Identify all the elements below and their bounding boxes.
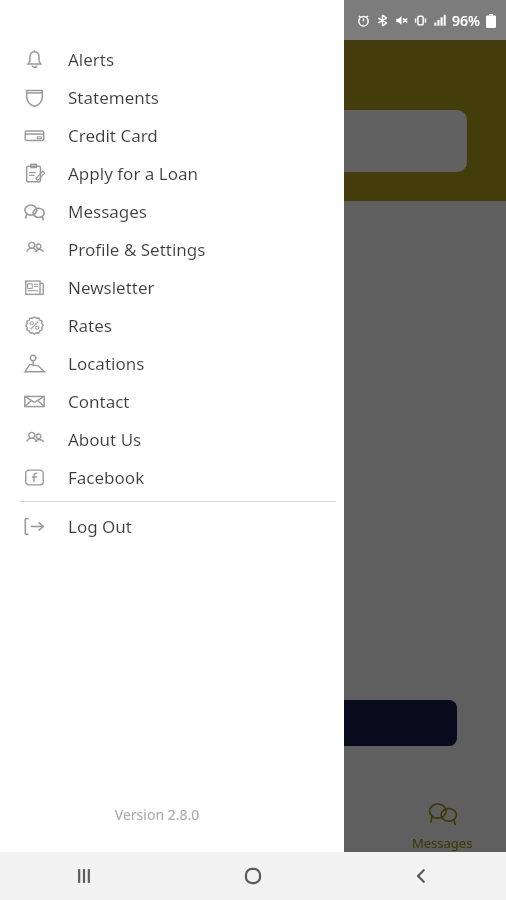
staticText: Contact: [68, 390, 130, 413]
button[interactable]: Contact: [0, 382, 344, 420]
button[interactable]: Sent: [18, 110, 467, 172]
staticText: Messages: [412, 834, 473, 852]
staticText: Version 2.8.0: [0, 805, 314, 824]
button[interactable]: Pay: [252, 788, 379, 860]
staticText: Alerts: [68, 48, 115, 71]
button[interactable]: Alerts: [0, 40, 344, 78]
staticText: Messages: [68, 200, 148, 223]
button[interactable]: Messages: [379, 788, 506, 860]
staticText: Facebook: [68, 466, 145, 489]
staticText: Statements: [68, 86, 160, 109]
button[interactable]: Log Out: [0, 507, 344, 545]
button[interactable]: About Us: [0, 420, 344, 458]
button[interactable]: Transfer: [126, 788, 252, 860]
staticText: Profile & Settings: [68, 238, 206, 261]
staticText: Credit Card: [68, 124, 158, 147]
button[interactable]: Facebook: [0, 458, 344, 496]
staticText: Newsletter: [68, 276, 155, 299]
button[interactable]: Recent apps: [0, 852, 168, 900]
button[interactable]: Credit Card: [0, 116, 344, 154]
button[interactable]: Locations: [0, 344, 344, 382]
staticText: Sent: [38, 130, 72, 152]
button[interactable]: Profile & Settings: [0, 230, 344, 268]
button[interactable]: Messages: [0, 192, 344, 230]
staticText: Apply for a Loan: [68, 162, 199, 185]
button[interactable]: Rates: [0, 306, 344, 344]
button[interactable]: Back: [337, 852, 506, 900]
staticText: About Us: [68, 428, 142, 451]
button[interactable]: Accounts: [0, 788, 126, 860]
staticText: Rates: [68, 314, 112, 337]
staticText: Locations: [68, 352, 145, 375]
button[interactable]: Newsletter: [0, 268, 344, 306]
button[interactable]: Apply for a Loan: [0, 154, 344, 192]
button[interactable]: Statements: [0, 78, 344, 116]
button[interactable]: Home: [168, 852, 337, 900]
staticText: 96%: [452, 11, 480, 30]
button[interactable]: [20, 700, 457, 746]
staticText: Log Out: [68, 515, 132, 538]
